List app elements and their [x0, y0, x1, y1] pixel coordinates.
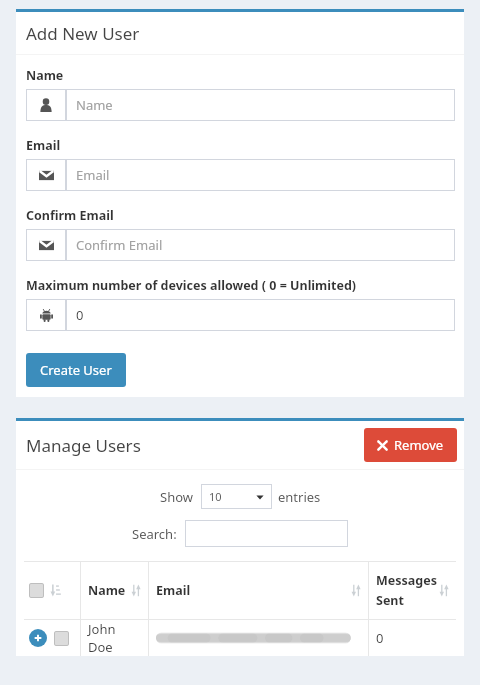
- button[interactable]: Name: [26, 89, 455, 121]
- staticText: Remove: [394, 436, 444, 454]
- staticText: Add New User: [26, 22, 140, 45]
- button[interactable]: Messages: [368, 562, 456, 619]
- staticText: Create User: [40, 361, 112, 379]
- button[interactable]: Remove: [364, 428, 457, 462]
- button[interactable]: Confirm Email: [26, 229, 455, 261]
- button[interactable]: 0: [26, 299, 455, 331]
- staticText: Maximum number of devices allowed ( 0 = …: [26, 277, 357, 294]
- staticText: Email: [76, 166, 110, 184]
- button[interactable]: Name: [80, 562, 148, 619]
- button[interactable]: Select all: [24, 562, 80, 619]
- staticText: 0: [376, 629, 384, 647]
- staticText: Name: [88, 582, 126, 599]
- staticText: Manage Users: [26, 434, 141, 457]
- staticText: Sent: [376, 592, 404, 609]
- button[interactable]: Email: [148, 562, 368, 619]
- button[interactable]: Search: [185, 520, 348, 547]
- button[interactable]: Select user: [54, 631, 69, 646]
- staticText: 10: [209, 489, 222, 504]
- staticText: Show: [160, 488, 193, 506]
- staticText: John Doe: [88, 620, 141, 656]
- button[interactable]: Select all: [29, 583, 44, 598]
- staticText: Name: [76, 96, 113, 114]
- staticText: Confirm Email: [76, 236, 163, 254]
- staticText: Name: [26, 67, 64, 84]
- staticText: Email: [26, 137, 61, 154]
- button[interactable]: Expand row: [29, 629, 47, 647]
- button[interactable]: Create User: [26, 353, 126, 387]
- staticText: entries: [278, 488, 321, 506]
- button[interactable]: Expand row: [24, 620, 456, 656]
- staticText: Confirm Email: [26, 207, 114, 224]
- button[interactable]: Entries per page: [201, 484, 272, 509]
- staticText: Messages: [376, 572, 437, 589]
- button[interactable]: Email: [26, 159, 455, 191]
- staticText: 0: [76, 306, 84, 324]
- staticText: Email: [156, 582, 191, 599]
- staticText: Search:: [132, 525, 177, 543]
